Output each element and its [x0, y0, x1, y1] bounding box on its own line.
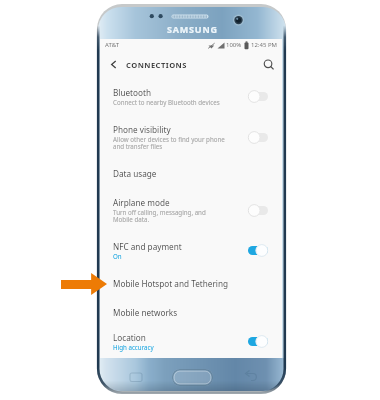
button[interactable]: Phone visibility: [100, 119, 282, 160]
staticText: Airplane mode: [113, 197, 170, 208]
button[interactable]: Mobile networks: [100, 300, 282, 328]
button[interactable]: [248, 244, 268, 257]
staticText: Connect to nearby Bluetooth devices: [113, 98, 220, 106]
button[interactable]: Mobile Hotspot and Tethering: [100, 271, 282, 300]
staticText: Bluetooth: [113, 87, 151, 98]
button[interactable]: [248, 90, 268, 103]
staticText: NFC and payment: [113, 241, 182, 252]
button[interactable]: [248, 204, 268, 217]
button[interactable]: Data usage: [100, 160, 282, 191]
staticText: Phone visibility: [113, 124, 171, 135]
button[interactable]: NFC and payment: [100, 233, 282, 271]
button[interactable]: Search: [256, 51, 282, 78]
staticText: High accuracy: [113, 343, 154, 351]
staticText: 12:45 PM: [251, 41, 277, 49]
staticText: SAMSUNG: [167, 23, 218, 35]
button[interactable]: [248, 131, 268, 144]
button[interactable]: Home: [172, 369, 213, 386]
staticText: Mobile networks: [113, 307, 178, 318]
button[interactable]: Location: [100, 328, 282, 358]
staticText: Location: [113, 332, 146, 343]
staticText: AT&T: [105, 41, 119, 49]
staticText: CONNECTIONS: [126, 60, 187, 70]
button[interactable]: Back: [100, 51, 126, 78]
staticText: Data usage: [113, 168, 157, 179]
staticText: On: [113, 252, 122, 260]
button[interactable]: Airplane mode: [100, 191, 282, 233]
staticText: 100%: [226, 41, 242, 49]
staticText: Mobile Hotspot and Tethering: [113, 278, 228, 289]
button[interactable]: Bluetooth: [100, 78, 282, 119]
staticText: Allow other devices to find your phone a…: [113, 135, 225, 151]
staticText: Turn off calling, messaging, and Mobile …: [113, 208, 206, 224]
button[interactable]: [248, 335, 268, 348]
